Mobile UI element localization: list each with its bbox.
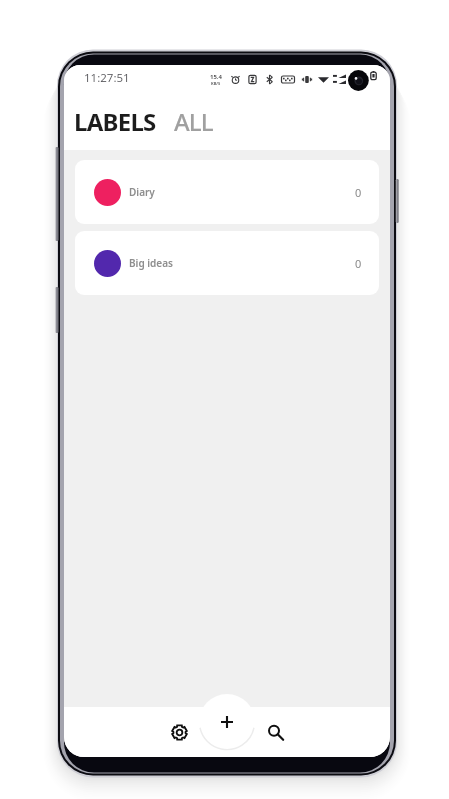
staticText: ALL [174,105,213,138]
button[interactable]: Diary [75,160,379,224]
staticText: Big ideas [129,256,173,270]
button[interactable]: LABELS [74,105,156,138]
staticText: 0 [355,185,362,200]
button[interactable]: Big ideas [75,231,379,295]
button[interactable]: Add new label [199,694,255,750]
staticText: KB/S [211,81,221,86]
staticText: 0 [355,256,362,271]
button[interactable]: ALL [174,105,213,138]
staticText: LABELS [74,105,156,138]
staticText: 11:27:51 [84,70,130,86]
staticText: Diary [129,185,155,199]
button[interactable]: Search [256,713,296,753]
button[interactable]: Settings [159,712,199,752]
staticText: 15.4 [210,73,222,81]
